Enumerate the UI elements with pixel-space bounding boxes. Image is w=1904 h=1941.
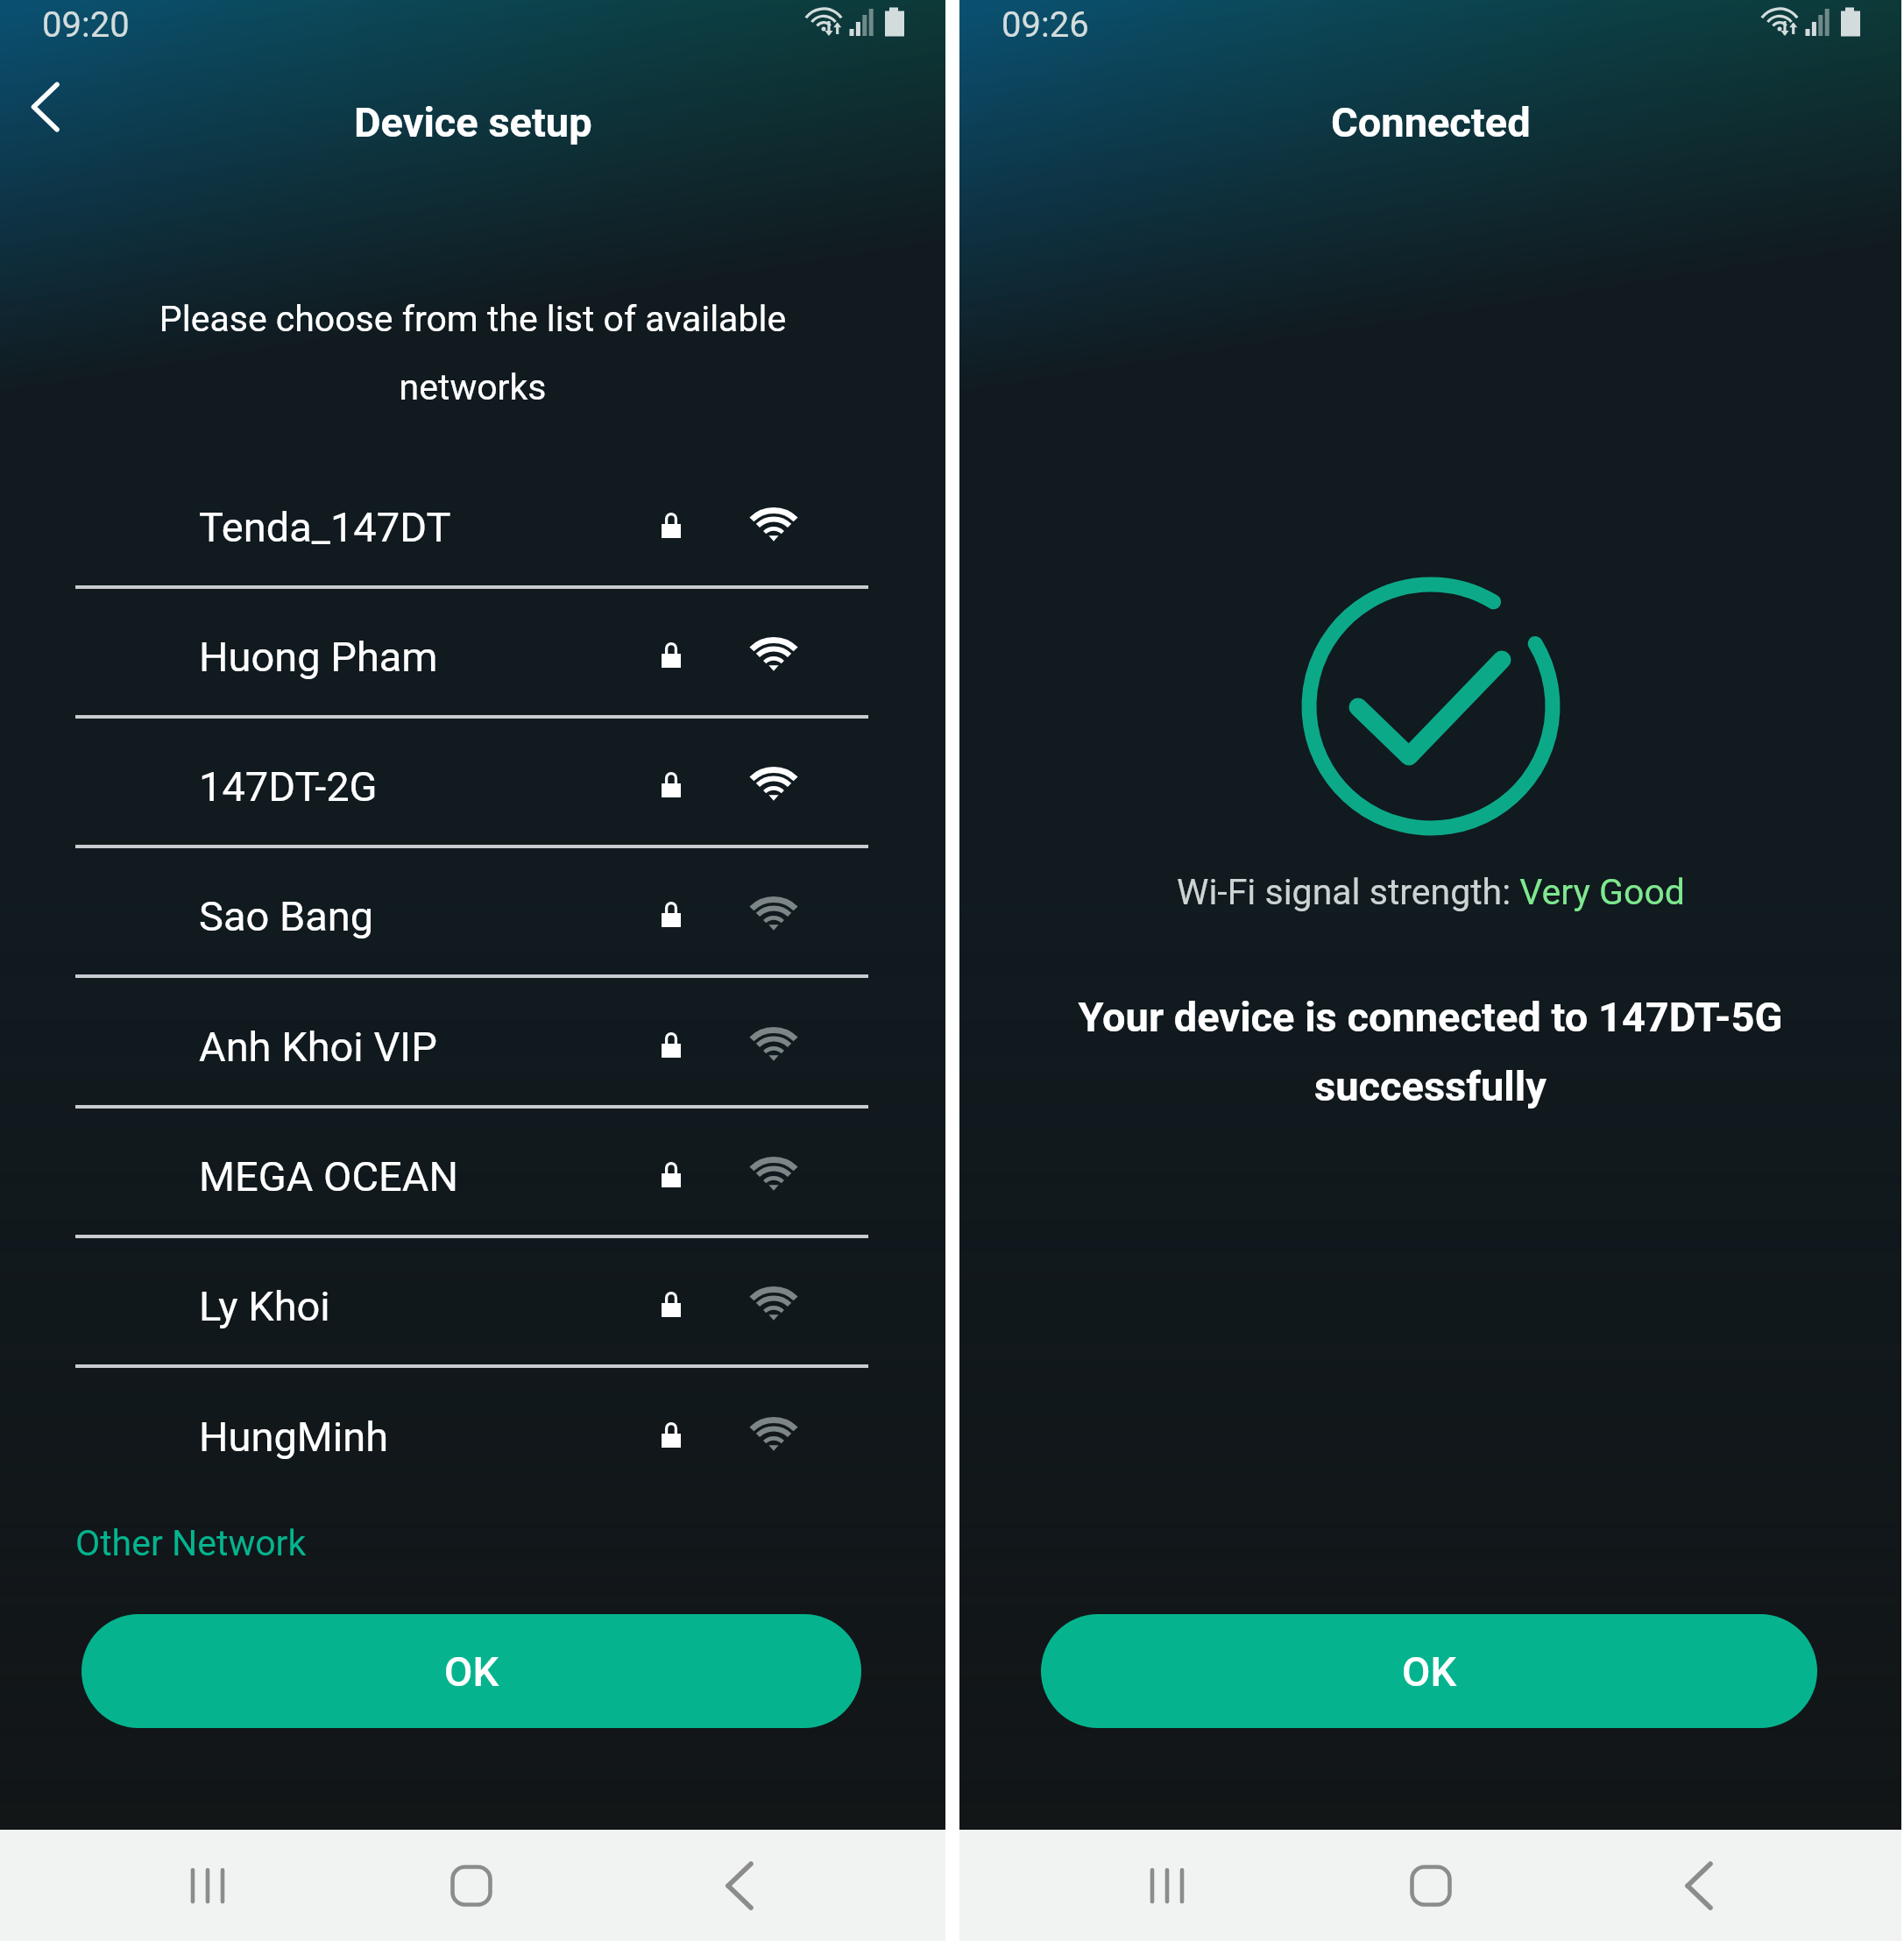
staticText: 147DT-2G bbox=[199, 762, 378, 811]
staticText: Tenda_147DT bbox=[199, 503, 451, 551]
staticText: OK bbox=[1402, 1647, 1457, 1696]
button[interactable]: HungMinh bbox=[0, 1365, 945, 1495]
button[interactable]: MEGA OCEAN bbox=[0, 1105, 945, 1235]
staticText: Wi-Fi signal strength: Very Good bbox=[1177, 871, 1685, 913]
button[interactable]: Tenda_147DT bbox=[0, 456, 945, 585]
button[interactable]: Back bbox=[0, 60, 95, 154]
button[interactable]: Recent apps bbox=[155, 1830, 260, 1941]
button[interactable]: Ly Khoi bbox=[0, 1235, 945, 1364]
staticText: HungMinh bbox=[199, 1413, 389, 1461]
button[interactable]: 147DT-2G bbox=[0, 715, 945, 845]
staticText: Device setup bbox=[354, 98, 592, 146]
button[interactable]: Sao Bang bbox=[0, 845, 945, 974]
staticText: OK bbox=[444, 1647, 499, 1696]
button[interactable]: Anh Khoi VIP bbox=[0, 975, 945, 1105]
staticText: 09:26 bbox=[1002, 4, 1089, 46]
staticText: Anh Khoi VIP bbox=[199, 1023, 437, 1071]
staticText: Sao Bang bbox=[199, 892, 374, 940]
staticText: Huong Pham bbox=[199, 633, 438, 681]
button[interactable]: Back bbox=[687, 1830, 792, 1941]
staticText: MEGA OCEAN bbox=[199, 1152, 458, 1201]
button[interactable]: Other Network bbox=[75, 1522, 307, 1564]
staticText: Your device is connected to 147DT-5G suc… bbox=[1065, 993, 1796, 1111]
button[interactable]: Back bbox=[1646, 1830, 1752, 1941]
button[interactable]: Huong Pham bbox=[0, 585, 945, 715]
button[interactable]: OK bbox=[1041, 1614, 1817, 1728]
staticText: 09:20 bbox=[42, 4, 130, 46]
button[interactable]: OK bbox=[81, 1614, 861, 1728]
staticText: Please choose from the list of available… bbox=[140, 298, 805, 408]
button[interactable]: Home bbox=[1378, 1830, 1483, 1941]
staticText: Ly Khoi bbox=[199, 1282, 330, 1330]
button[interactable]: Recent apps bbox=[1115, 1830, 1220, 1941]
button[interactable]: Home bbox=[419, 1830, 524, 1941]
staticText: Connected bbox=[1331, 98, 1531, 146]
